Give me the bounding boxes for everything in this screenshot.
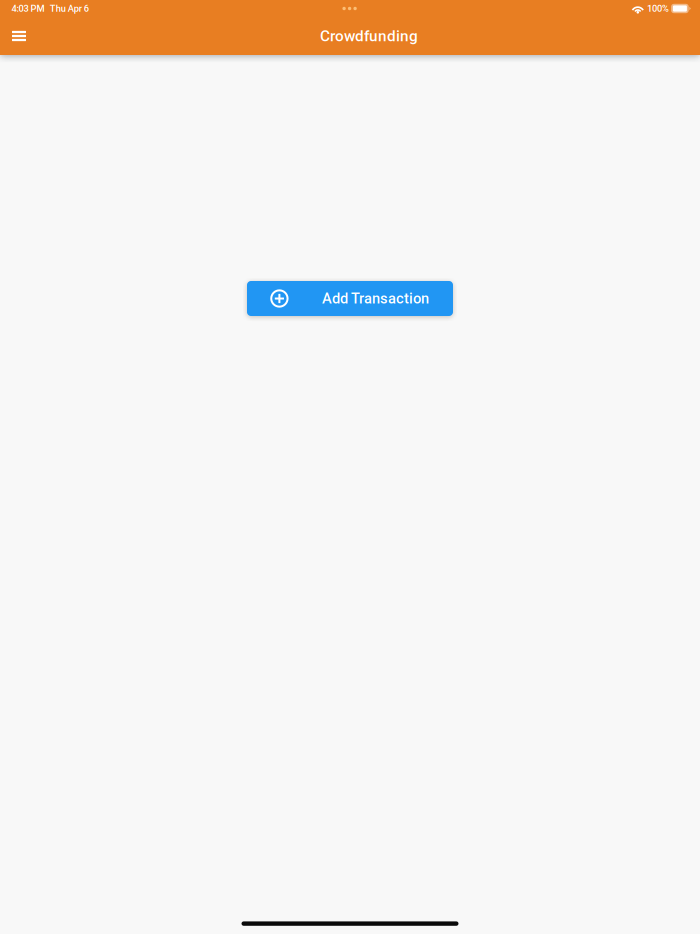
button[interactable]: Menu bbox=[0, 17, 38, 55]
staticText: Add Transaction bbox=[322, 290, 429, 307]
staticText: Thu Apr 6 bbox=[50, 3, 89, 14]
button[interactable]: Add Transaction bbox=[247, 281, 453, 316]
staticText: 4:03 PM bbox=[11, 3, 44, 14]
staticText: 100% bbox=[647, 3, 669, 14]
staticText: Crowdfunding bbox=[320, 27, 418, 45]
